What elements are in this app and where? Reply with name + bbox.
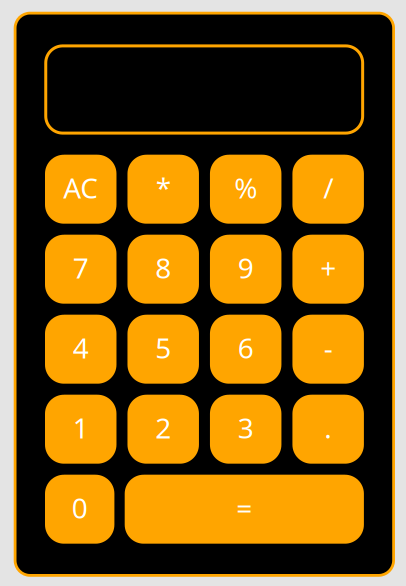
button[interactable]: 6: [210, 315, 281, 384]
button[interactable]: Equals: [125, 475, 364, 544]
button[interactable]: 5: [127, 315, 199, 384]
button[interactable]: Add: [292, 235, 364, 304]
button[interactable]: 9: [210, 235, 281, 304]
staticText: %: [234, 169, 257, 206]
staticText: 7: [73, 249, 89, 286]
staticText: .: [324, 409, 332, 446]
button[interactable]: 8: [127, 235, 199, 304]
staticText: /: [323, 169, 333, 206]
button[interactable]: 7: [45, 235, 116, 304]
staticText: +: [320, 249, 336, 286]
staticText: 8: [155, 249, 171, 286]
staticText: 2: [155, 409, 171, 446]
button[interactable]: 0: [45, 475, 114, 544]
staticText: =: [236, 489, 252, 526]
staticText: 9: [238, 249, 254, 286]
staticText: 1: [73, 409, 89, 446]
button[interactable]: Subtract: [292, 315, 364, 384]
button[interactable]: 4: [45, 315, 116, 384]
staticText: -: [324, 329, 333, 366]
staticText: AC: [63, 169, 98, 206]
button[interactable]: Divide: [292, 155, 364, 224]
button[interactable]: Percent: [210, 155, 281, 224]
button[interactable]: 1: [45, 395, 116, 464]
button[interactable]: 3: [210, 395, 281, 464]
button[interactable]: 2: [127, 395, 199, 464]
staticText: 6: [238, 329, 254, 366]
button[interactable]: All clear: [45, 155, 116, 224]
staticText: 5: [155, 329, 171, 366]
staticText: 0: [72, 489, 88, 526]
staticText: 3: [238, 409, 254, 446]
button[interactable]: Decimal point: [292, 395, 364, 464]
staticText: *: [156, 169, 171, 206]
button[interactable]: Multiply: [127, 155, 199, 224]
staticText: 4: [73, 329, 89, 366]
